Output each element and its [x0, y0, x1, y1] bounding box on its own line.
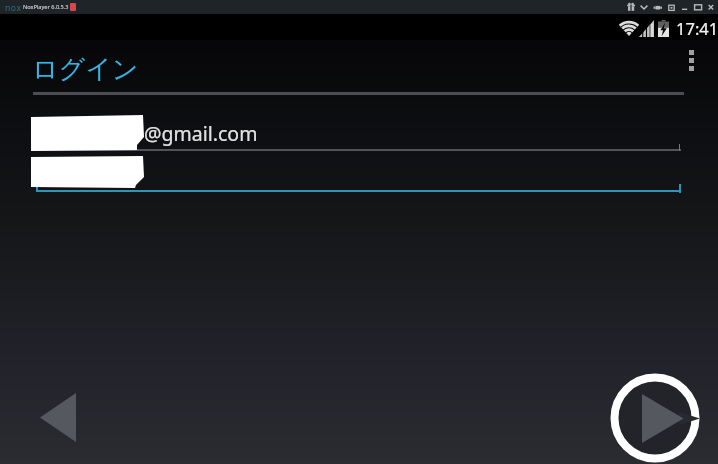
staticText: NoxPlayer 6.0.5.3	[23, 3, 69, 11]
button[interactable]	[36, 153, 681, 192]
button[interactable]: Play	[605, 368, 709, 464]
button[interactable]: @gmail.com	[33, 112, 681, 151]
staticText: 17:41	[676, 17, 718, 39]
staticText: nox	[5, 2, 22, 14]
button[interactable]: Back	[22, 375, 94, 453]
staticText: ログイン	[32, 53, 139, 86]
staticText: @gmail.com	[144, 120, 258, 147]
button[interactable]: More options	[673, 38, 709, 82]
